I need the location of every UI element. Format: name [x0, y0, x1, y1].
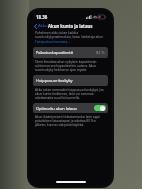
staticText: Akun kunto ja lataus — [48, 23, 93, 29]
button[interactable]: Huippusuorituskyky — [33, 75, 108, 86]
button[interactable]: Palautuskapasiteetti — [33, 47, 108, 58]
staticText: Akku tukee normaalia huippusuorituskykyä… — [35, 88, 106, 100]
staticText: 18.36 — [36, 14, 48, 20]
staticText: Optimoitu akun lataus — [36, 106, 94, 111]
staticText: Huippusuorituskyky — [36, 78, 105, 83]
button[interactable]: Back to Akku — [32, 21, 50, 31]
button[interactable]: Tietoja akun kunnosta… — [35, 40, 70, 44]
staticText: 82 % — [96, 50, 105, 55]
staticText: Tämä ilmoittaa akun nykyisen kapasiteeti… — [35, 60, 106, 72]
staticText: Akku — [38, 23, 48, 29]
button[interactable]: Optimoitu akun lataus, on — [94, 105, 106, 111]
staticText: Palautuskapasiteetti — [36, 50, 96, 55]
staticText: Akun ikääntymisen hidastamiseksi laite o… — [35, 115, 106, 127]
staticText: Puhelimen akku tukee kaikkia suorituskyk… — [35, 31, 106, 39]
button[interactable]: Optimoitu akun lataus — [33, 103, 108, 113]
